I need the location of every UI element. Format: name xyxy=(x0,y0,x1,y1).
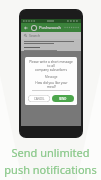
staticText: SEND xyxy=(59,97,67,101)
staticText: CANCEL xyxy=(34,97,45,101)
staticText: How did you like your meal? xyxy=(35,81,68,89)
button[interactable]: SEND xyxy=(52,95,74,102)
button[interactable]: Search xyxy=(21,32,81,39)
staticText: Send unlimited xyxy=(11,145,90,160)
button[interactable]: CANCEL xyxy=(28,95,50,102)
staticText: push notifications xyxy=(4,162,97,177)
button[interactable]: Back xyxy=(23,25,29,31)
staticText: Message xyxy=(45,75,58,79)
staticText: Search xyxy=(29,33,41,38)
staticText: Pushwoosh xyxy=(39,25,61,30)
staticText: Please write a short message to all comp… xyxy=(28,60,74,72)
